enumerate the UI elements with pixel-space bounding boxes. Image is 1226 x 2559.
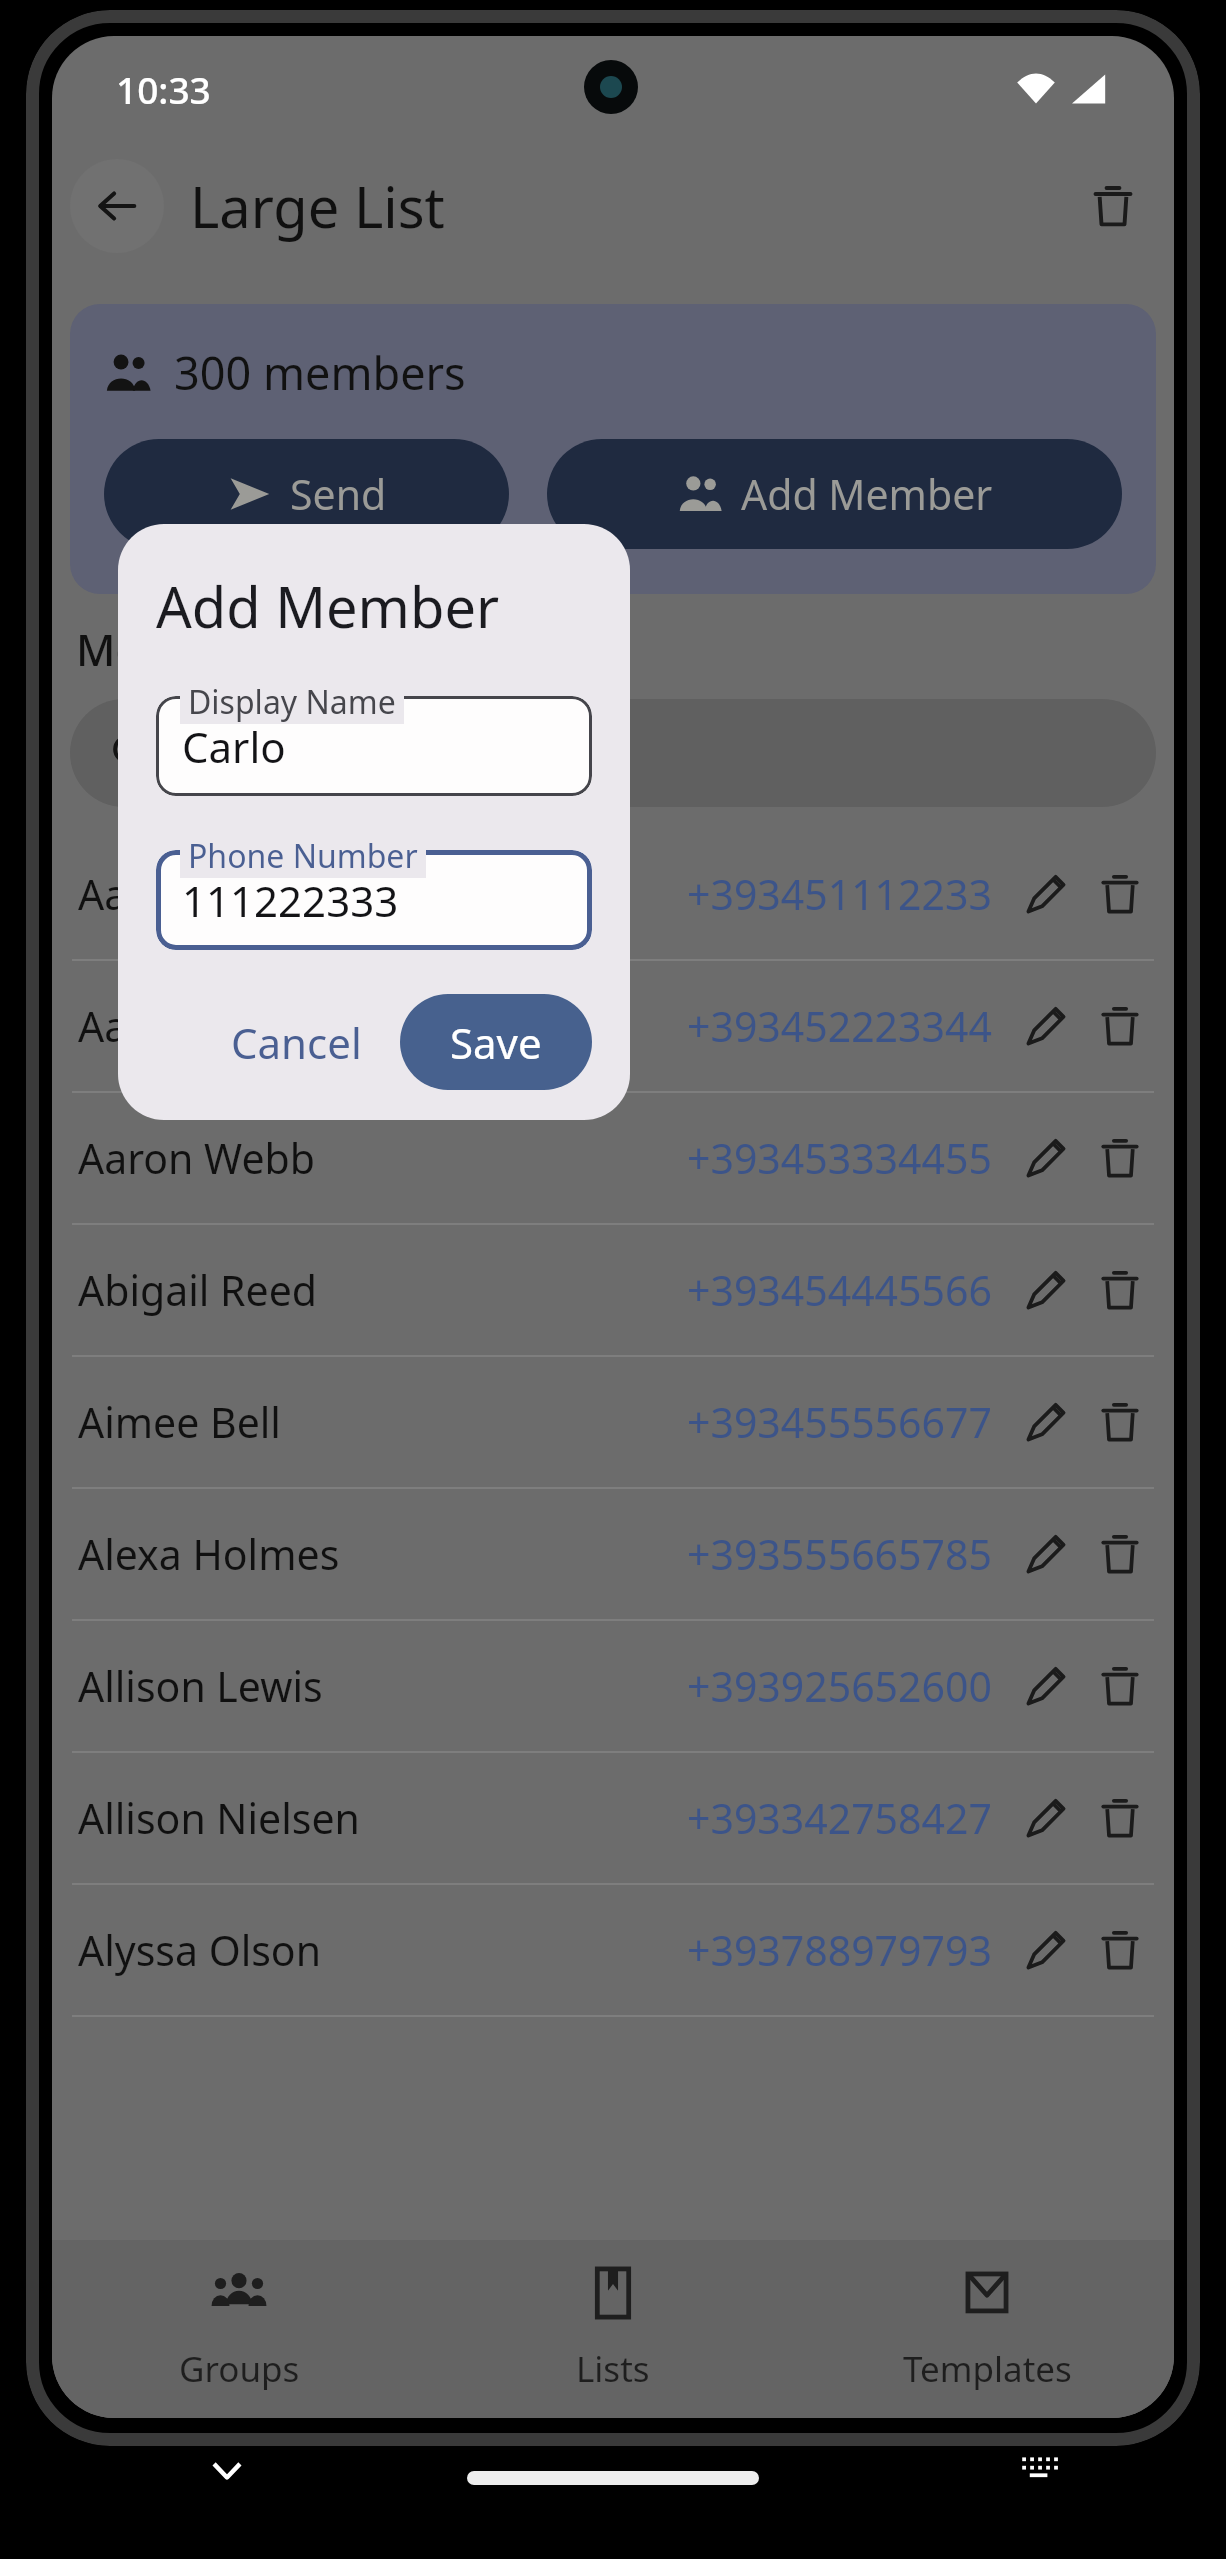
button[interactable]: Edit member [1016,1260,1076,1320]
staticText: +393454445566 [687,1262,992,1318]
staticText: Lists [576,2345,650,2393]
button[interactable]: Carlo [156,696,592,796]
staticText: 300 members [174,342,466,403]
staticText: Large List [190,168,445,244]
staticText: Carlo [182,718,286,775]
staticText: Save [450,1014,542,1071]
button[interactable]: 111222333 [156,850,592,950]
button[interactable]: Aimee Bell [52,1357,1174,1487]
staticText: 111222333 [182,872,399,929]
button[interactable]: Back [70,159,164,253]
staticText: +393788979793 [687,1922,992,1978]
staticText: Send [290,466,387,522]
button[interactable]: Delete member [1090,1524,1150,1584]
staticText: +393452223344 [687,998,992,1054]
button[interactable]: Delete member [1090,864,1150,924]
staticText: Aimee Bell [78,1394,281,1450]
button[interactable]: Alexa Holmes [52,1489,1174,1619]
staticText: Phone Number [188,834,418,878]
staticText: Add Member [741,466,993,522]
button[interactable]: Send [104,439,509,549]
staticText: Members [76,620,272,679]
button[interactable]: Delete member [1090,1788,1150,1848]
button[interactable]: Lists [426,2240,800,2418]
button[interactable]: Delete member [1090,1128,1150,1188]
button[interactable]: Aaron Carter [52,829,1174,959]
button[interactable]: Allison Nielsen [52,1753,1174,1883]
staticText: Aaron Diaz [78,998,287,1054]
staticText: +393555665785 [687,1526,992,1582]
staticText: Aaron Webb [78,1130,315,1186]
button[interactable]: Edit member [1016,1920,1076,1980]
button[interactable]: Delete member [1090,1392,1150,1452]
staticText: 10:33 [116,64,211,114]
button[interactable]: Delete member [1090,996,1150,1056]
button[interactable]: Hide keyboard [202,2445,252,2495]
staticText: Allison Nielsen [78,1790,360,1846]
button[interactable]: Groups [52,2240,426,2418]
button[interactable]: Alyssa Olson [52,1885,1174,2015]
button[interactable] [70,699,1156,807]
staticText: Abigail Reed [78,1262,317,1318]
staticText: Allison Lewis [78,1658,323,1714]
button[interactable]: Delete member [1090,1656,1150,1716]
staticText: Alexa Holmes [78,1526,340,1582]
staticText: Display Name [188,680,396,724]
staticText: Add Member [156,568,500,644]
button[interactable]: Add Member [547,439,1122,549]
button[interactable]: Delete member [1090,1260,1150,1320]
button[interactable]: Abigail Reed [52,1225,1174,1355]
staticText: +393451112233 [687,866,992,922]
staticText: +393925652600 [687,1658,992,1714]
button[interactable]: Edit member [1016,996,1076,1056]
button[interactable]: Delete member [1090,1920,1150,1980]
button[interactable]: Allison Lewis [52,1621,1174,1751]
staticText: +393453334455 [687,1130,992,1186]
button[interactable]: Edit member [1016,1656,1076,1716]
staticText: Aaron Carter [78,866,325,922]
button[interactable]: Cancel [209,998,384,1087]
button[interactable]: Edit member [1016,1392,1076,1452]
staticText: +393455556677 [687,1394,992,1450]
staticText: Templates [903,2345,1072,2393]
staticText: +393342758427 [687,1790,992,1846]
staticText: Cancel [231,1014,362,1071]
button[interactable]: Edit member [1016,864,1076,924]
button[interactable]: Aaron Webb [52,1093,1174,1223]
button[interactable]: Save [400,994,592,1090]
button[interactable]: Edit member [1016,1128,1076,1188]
button[interactable]: Edit member [1016,1524,1076,1584]
button[interactable]: Delete list [1070,163,1156,249]
staticText: Alyssa Olson [78,1922,322,1978]
button[interactable]: Aaron Diaz [52,961,1174,1091]
button[interactable]: Switch keyboard [1012,2443,1066,2497]
staticText: Groups [179,2345,300,2393]
button[interactable]: Edit member [1016,1788,1076,1848]
button[interactable]: Templates [800,2240,1174,2418]
